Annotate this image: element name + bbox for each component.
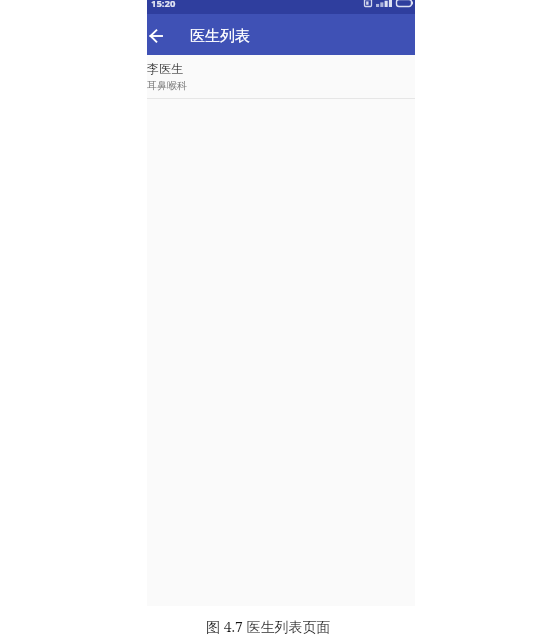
button[interactable]: 李医生 (147, 55, 415, 98)
staticText: 耳鼻喉科 (147, 79, 187, 92)
staticText: 图 4.7 医生列表页面 (206, 617, 331, 636)
staticText: 医生列表 (190, 27, 250, 46)
button[interactable]: Back (144, 24, 168, 48)
staticText: 15:20 (151, 0, 176, 10)
staticText: 李医生 (147, 61, 183, 76)
